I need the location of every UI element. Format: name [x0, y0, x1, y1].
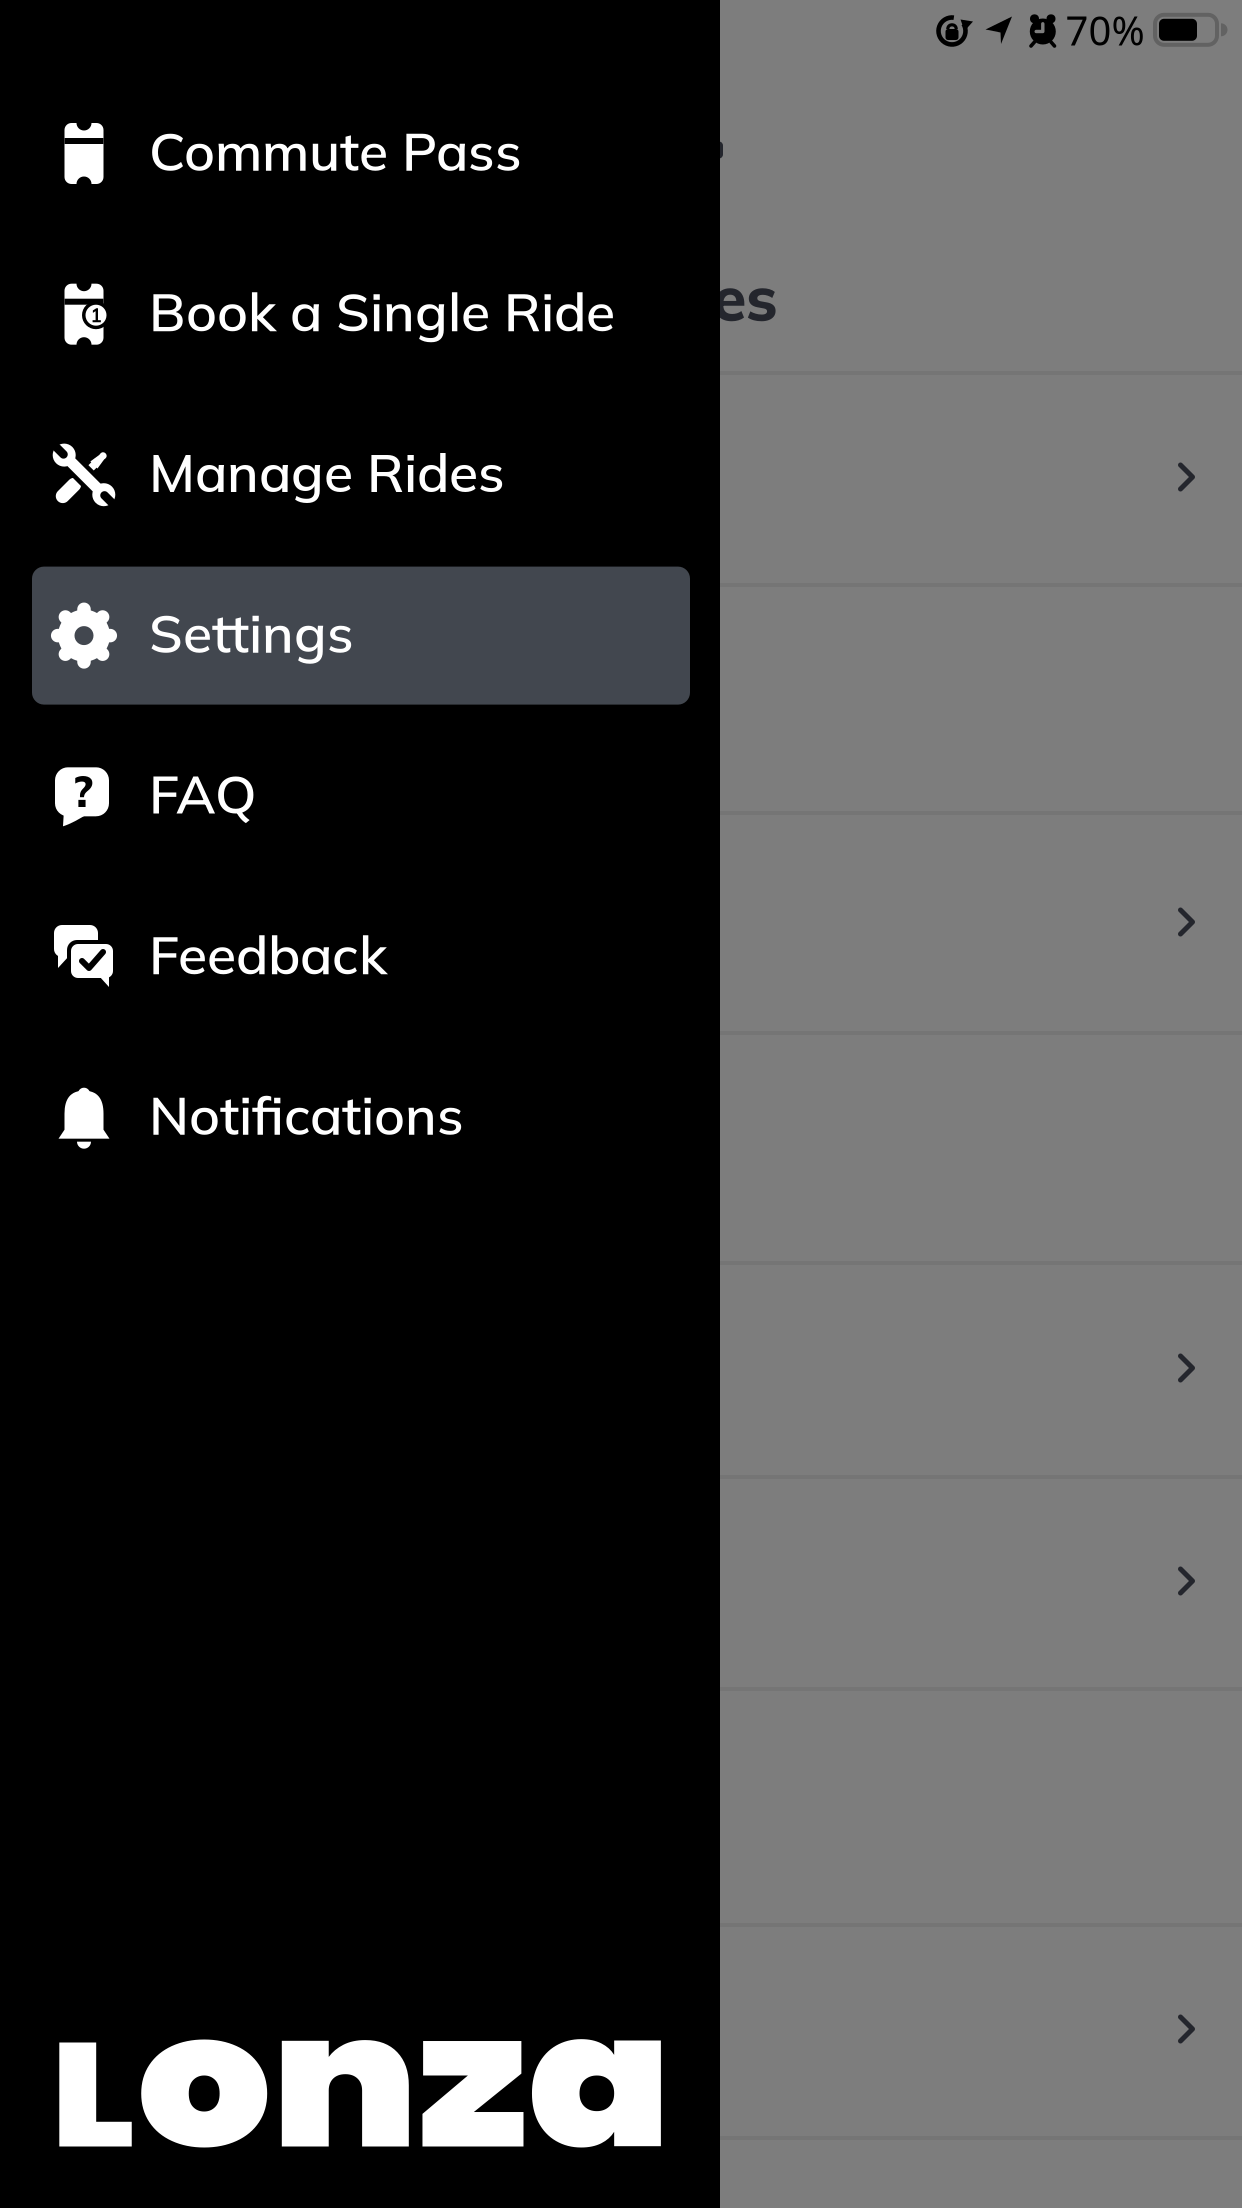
button[interactable]: Feedback — [32, 888, 690, 1026]
staticText: Manage Rides — [149, 438, 505, 505]
staticText: Book a Single Ride — [149, 278, 615, 345]
staticText: Settings — [149, 599, 354, 666]
staticText: ? — [72, 763, 93, 818]
staticText: FAQ — [149, 760, 257, 827]
button[interactable]: Commute Pass — [32, 84, 690, 222]
staticText: Notifications — [149, 1081, 464, 1148]
button[interactable]: ? — [32, 727, 690, 865]
staticText: My Rides — [504, 258, 778, 336]
staticText: 70% — [1065, 3, 1144, 56]
button[interactable]: Close menu — [0, 0, 1242, 2208]
button[interactable]: 1 — [32, 245, 690, 383]
button[interactable]: Notifications — [32, 1049, 690, 1187]
staticText: L — [51, 1992, 125, 2198]
staticText: Commute Pass — [149, 117, 522, 184]
staticText: Feedback — [149, 920, 387, 987]
button[interactable]: Manage Rides — [32, 406, 690, 544]
staticText: onza — [127, 1950, 600, 2208]
staticText: 1 — [90, 303, 101, 327]
button[interactable]: Settings — [32, 567, 690, 705]
